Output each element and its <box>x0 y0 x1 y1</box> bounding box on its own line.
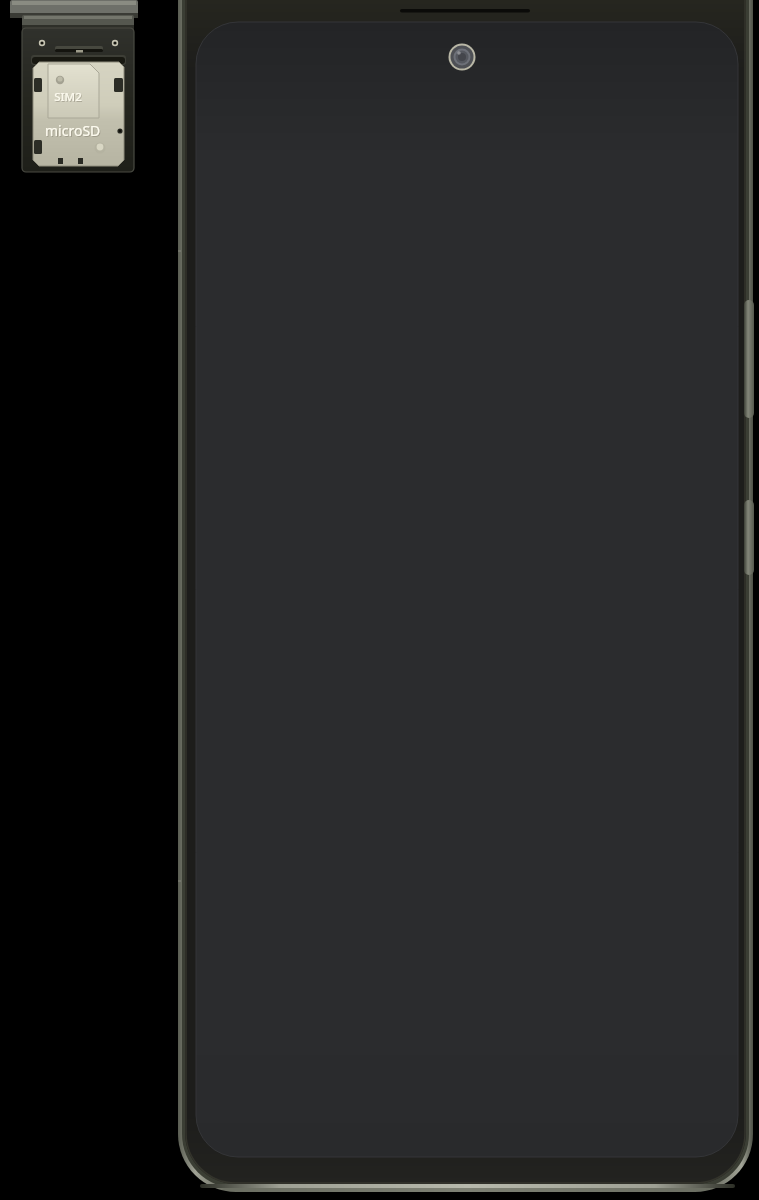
button[interactable]: Phone with SIM tray removed <box>0 0 759 1200</box>
